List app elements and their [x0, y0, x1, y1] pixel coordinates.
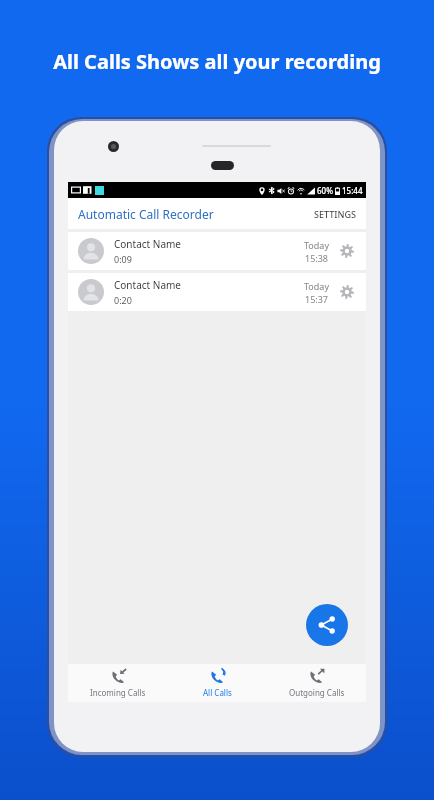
- staticText: 15:38: [305, 252, 329, 264]
- button[interactable]: Share: [306, 604, 348, 646]
- button[interactable]: All Calls: [168, 664, 267, 702]
- button[interactable]: Options: [336, 281, 358, 303]
- button[interactable]: Contact Name: [68, 273, 366, 311]
- button[interactable]: Options: [336, 240, 358, 262]
- staticText: 0:20: [114, 294, 132, 306]
- staticText: 15:37: [305, 293, 329, 305]
- staticText: SETTINGS: [314, 208, 356, 220]
- staticText: 15:44: [342, 185, 363, 196]
- staticText: All Calls Shows all your recording: [53, 48, 381, 75]
- staticText: 60%: [317, 185, 333, 196]
- button[interactable]: SETTINGS: [304, 202, 366, 226]
- staticText: 0:09: [114, 253, 132, 265]
- staticText: Today: [304, 280, 329, 292]
- staticText: Contact Name: [114, 237, 181, 251]
- staticText: Contact Name: [114, 278, 181, 292]
- staticText: Automatic Call Recorder: [78, 206, 214, 222]
- staticText: Incoming Calls: [90, 687, 146, 698]
- button[interactable]: Contact Name: [68, 232, 366, 270]
- button[interactable]: Incoming Calls: [68, 664, 168, 702]
- staticText: Outgoing Calls: [289, 687, 345, 698]
- staticText: Today: [304, 239, 329, 251]
- button[interactable]: Outgoing Calls: [267, 664, 366, 702]
- staticText: All Calls: [203, 687, 232, 698]
